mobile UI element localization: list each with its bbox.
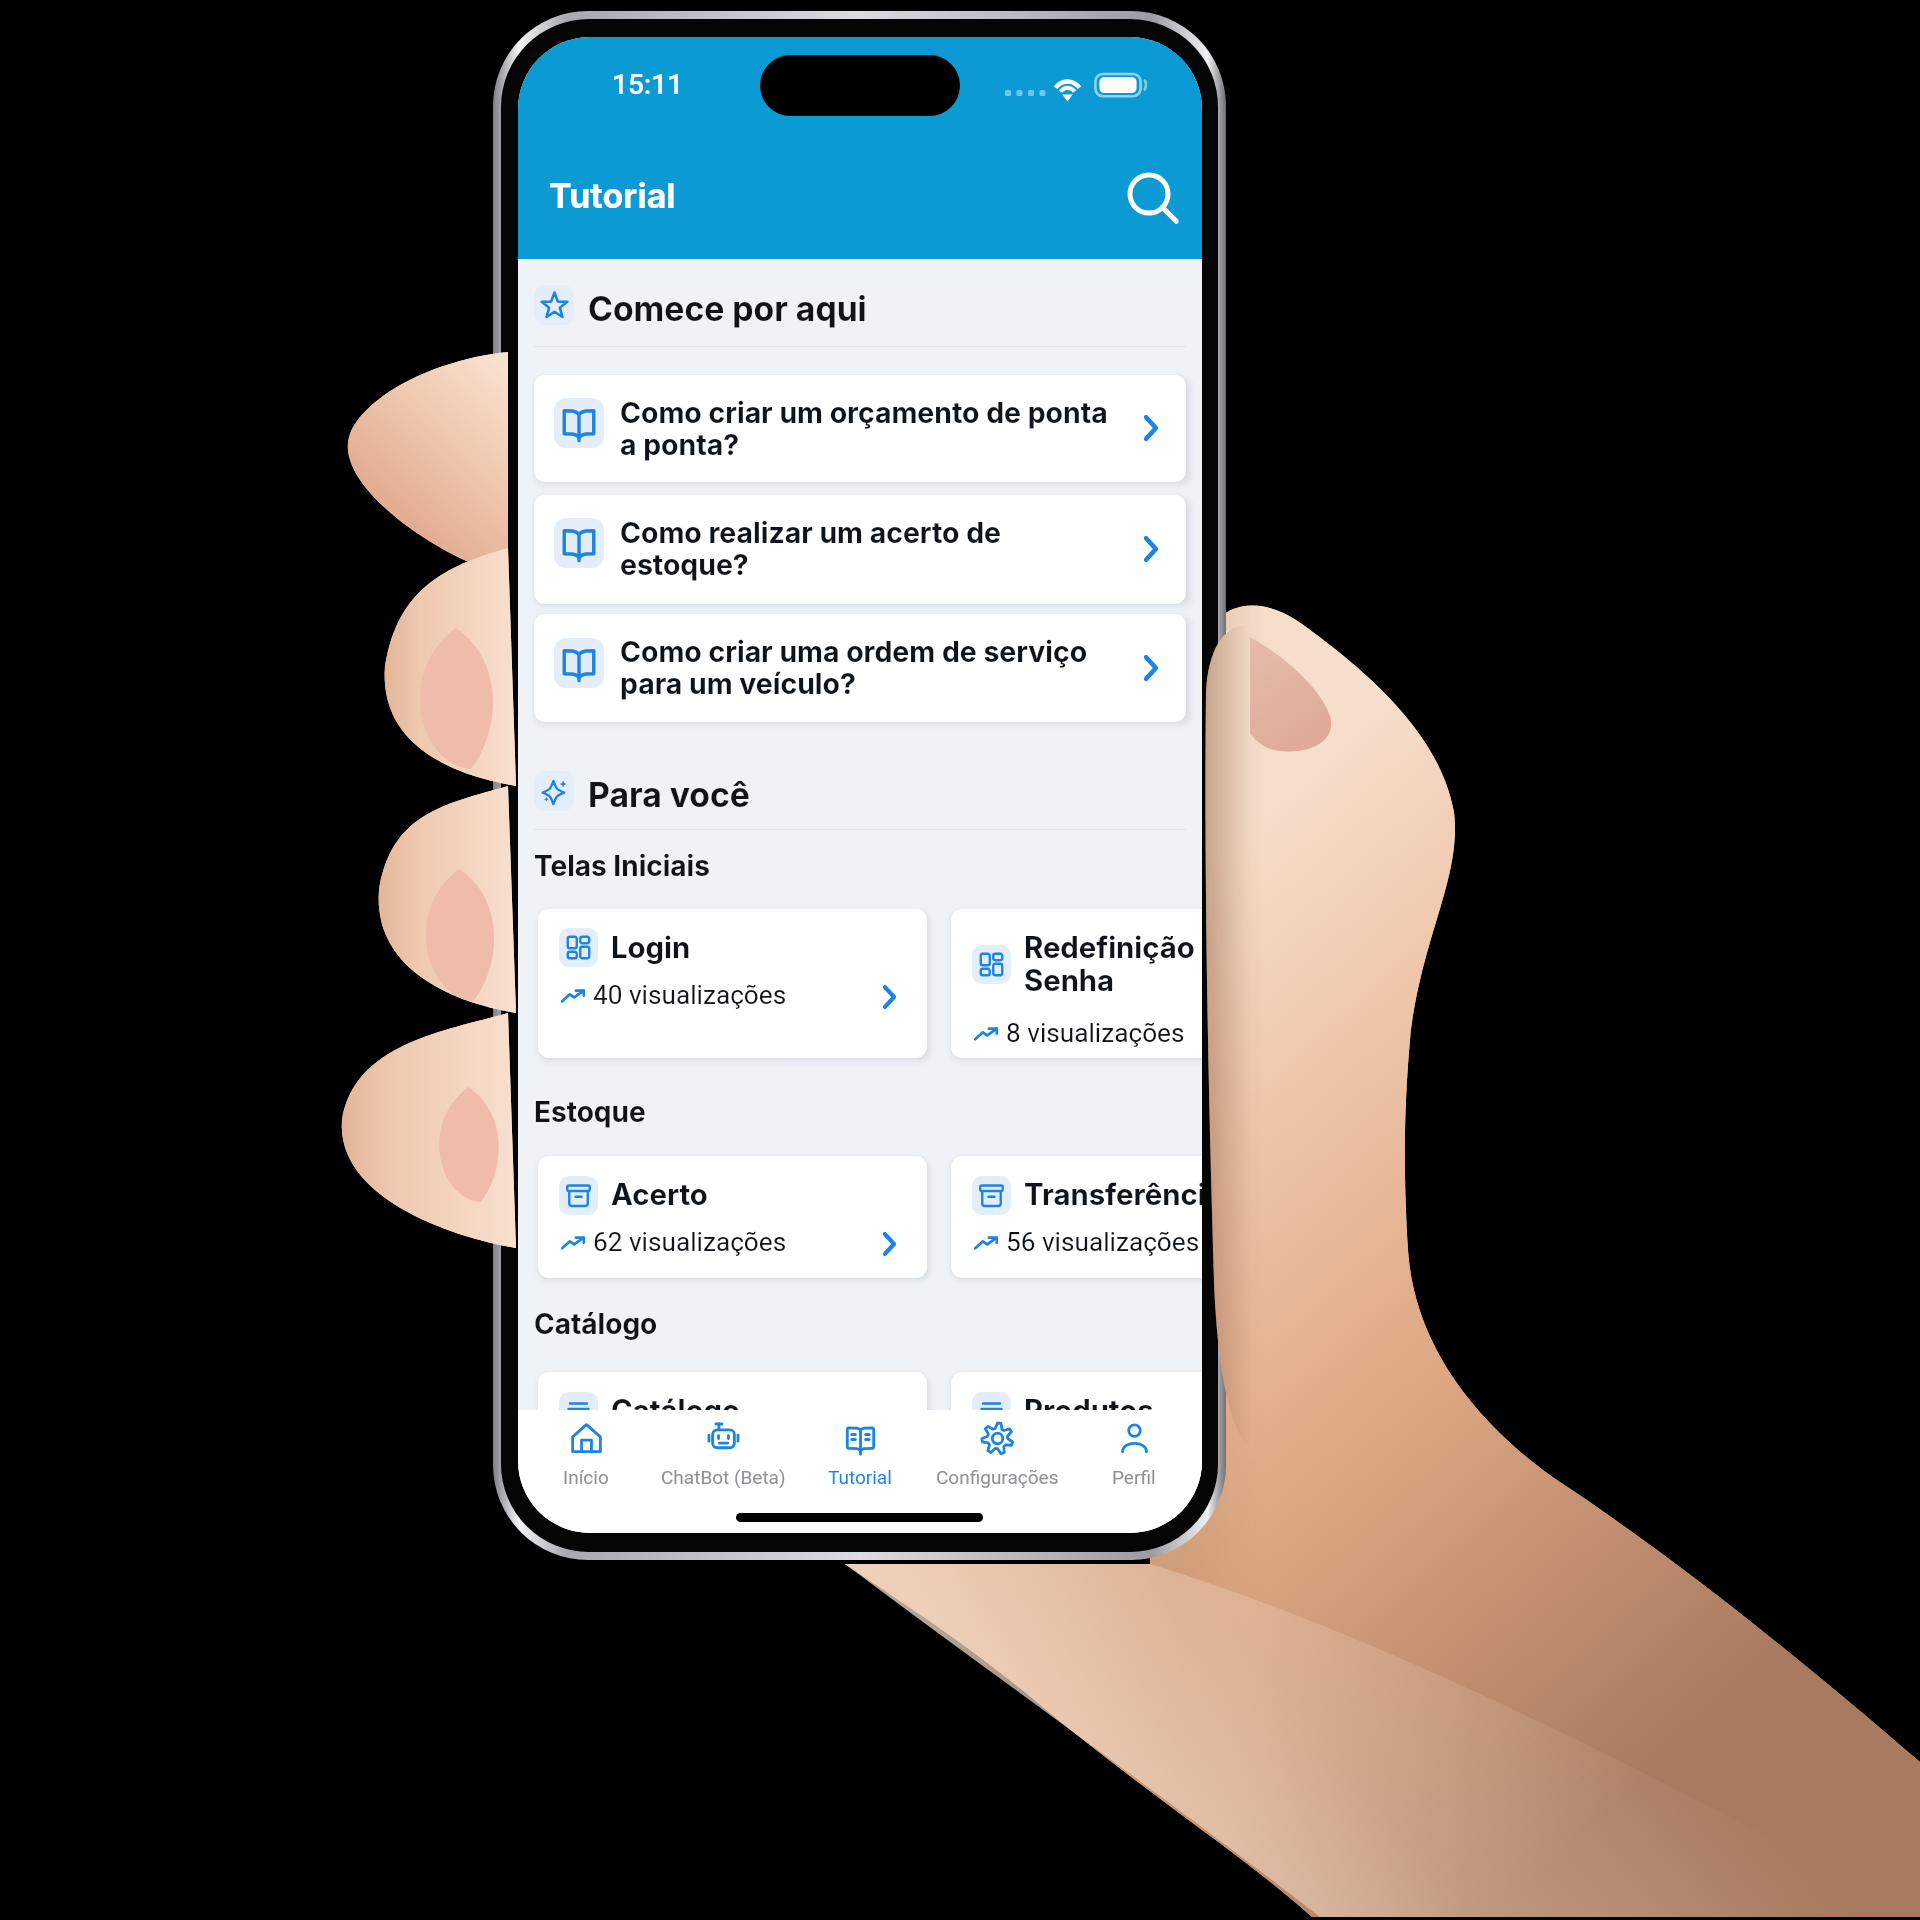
staticText: Telas Iniciais xyxy=(534,849,710,883)
staticText: Perfil xyxy=(1112,1466,1156,1488)
staticText: 62 visualizações xyxy=(593,1227,787,1258)
button[interactable] xyxy=(534,375,1186,482)
staticText: 31 visualizações xyxy=(593,1443,787,1474)
button[interactable] xyxy=(951,909,1202,1058)
button[interactable] xyxy=(538,1372,927,1494)
staticText: Produtos xyxy=(1024,1393,1154,1428)
staticText: Transferência xyxy=(1024,1177,1202,1212)
staticText: a ponta? xyxy=(620,427,740,461)
button[interactable]: ChatBot (Beta) xyxy=(645,1418,801,1494)
staticText: Redefinição de xyxy=(1024,930,1202,965)
staticText: Como criar um orçamento de ponta xyxy=(620,395,1108,429)
staticText: Início xyxy=(563,1466,609,1488)
staticText: 24 visualizações xyxy=(1006,1443,1200,1474)
staticText: Tutorial xyxy=(828,1466,892,1488)
staticText: 8 visualizações xyxy=(1006,1018,1185,1049)
button[interactable]: Início xyxy=(518,1418,664,1494)
staticText: 56 visualizações xyxy=(1006,1227,1200,1258)
staticText: 40 visualizações xyxy=(593,980,787,1011)
button[interactable]: Configurações xyxy=(919,1418,1075,1494)
staticText: para um veículo? xyxy=(620,666,856,700)
staticText: Senha xyxy=(1024,963,1115,998)
button[interactable] xyxy=(951,1372,1202,1494)
staticText: estoque? xyxy=(620,547,749,581)
staticText: 15:11 xyxy=(612,68,684,101)
button[interactable] xyxy=(951,1156,1202,1278)
staticText: Acerto xyxy=(611,1177,708,1212)
staticText: Comece por aqui xyxy=(588,288,867,329)
staticText: Catálogo xyxy=(534,1307,658,1341)
button[interactable]: Perfil xyxy=(1056,1418,1202,1494)
button[interactable]: Tutorial xyxy=(782,1418,938,1494)
button[interactable] xyxy=(534,614,1186,722)
button[interactable] xyxy=(538,909,927,1058)
button[interactable]: Search xyxy=(1114,160,1190,236)
staticText: Tutorial xyxy=(549,175,676,216)
staticText: Configurações xyxy=(936,1466,1059,1488)
staticText: Como criar uma ordem de serviço xyxy=(620,634,1088,668)
button[interactable] xyxy=(538,1156,927,1278)
button[interactable] xyxy=(534,495,1186,604)
staticText: Para você xyxy=(588,774,750,815)
staticText: Catálogo xyxy=(611,1393,740,1428)
staticText: Estoque xyxy=(534,1095,646,1129)
staticText: ChatBot (Beta) xyxy=(661,1466,786,1488)
staticText: Login xyxy=(611,930,691,965)
staticText: Como realizar um acerto de xyxy=(620,515,1002,549)
